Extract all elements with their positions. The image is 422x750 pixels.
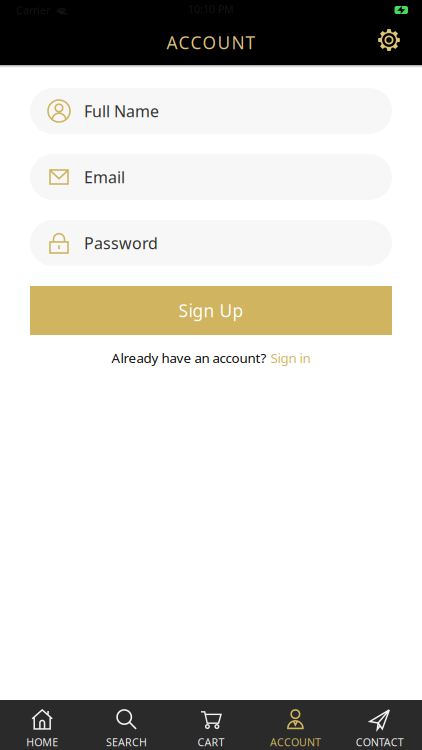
staticText: 10:10 PM bbox=[188, 2, 234, 16]
button[interactable]: Sign Up bbox=[30, 286, 392, 335]
staticText: Password bbox=[84, 232, 158, 254]
staticText: Email bbox=[84, 166, 125, 188]
staticText: ACCOUNT bbox=[270, 735, 321, 749]
staticText: Already have an account? bbox=[111, 349, 266, 367]
staticText: Sign in bbox=[270, 349, 310, 367]
staticText: HOME bbox=[26, 735, 58, 749]
button[interactable]: CONTACT bbox=[338, 701, 422, 749]
staticText: CART bbox=[197, 735, 224, 749]
staticText: Full Name bbox=[84, 100, 159, 122]
button[interactable]: SEARCH bbox=[84, 701, 169, 749]
staticText: CONTACT bbox=[356, 735, 404, 749]
staticText: Carrier bbox=[16, 3, 50, 17]
button[interactable]: CART bbox=[169, 701, 253, 749]
button[interactable]: HOME bbox=[0, 701, 84, 749]
textField[interactable]: Password bbox=[84, 232, 392, 254]
staticText: ACCOUNT bbox=[166, 31, 255, 54]
button[interactable]: ACCOUNT bbox=[253, 701, 338, 749]
textField[interactable]: Full Name bbox=[84, 100, 392, 122]
button[interactable]: Settings bbox=[378, 29, 400, 51]
button[interactable]: Sign in bbox=[270, 349, 310, 367]
staticText: Sign Up bbox=[178, 299, 243, 322]
staticText: SEARCH bbox=[106, 735, 147, 749]
textField[interactable]: Email bbox=[84, 166, 392, 188]
